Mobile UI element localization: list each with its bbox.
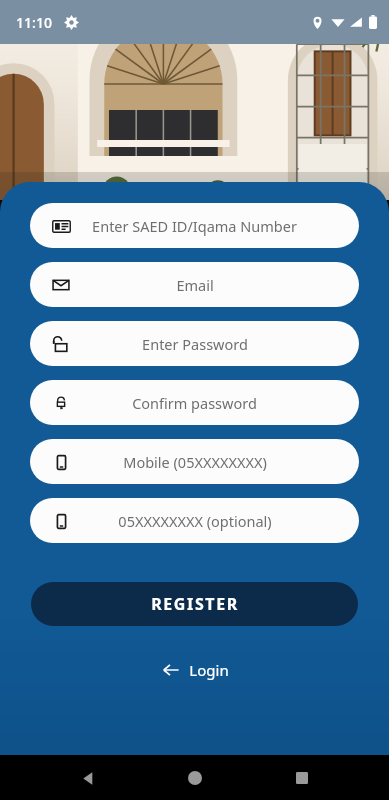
- staticText: REGISTER: [151, 593, 239, 615]
- staticText: Email: [176, 275, 214, 295]
- button[interactable]: 05XXXXXXXX (optional): [30, 498, 359, 543]
- button[interactable]: Mobile (05XXXXXXXX): [30, 439, 359, 484]
- button[interactable]: REGISTER: [31, 582, 358, 626]
- staticText: Login: [189, 660, 229, 680]
- button[interactable]: Enter Password: [30, 321, 359, 366]
- staticText: Mobile (05XXXXXXXX): [123, 452, 267, 472]
- staticText: Confirm password: [132, 393, 257, 413]
- button[interactable]: Confirm password: [30, 380, 359, 425]
- button[interactable]: Enter SAED ID/Iqama Number: [30, 203, 359, 248]
- staticText: 05XXXXXXXX (optional): [118, 511, 272, 531]
- staticText: Enter SAED ID/Iqama Number: [92, 216, 297, 236]
- button[interactable]: Login: [147, 654, 243, 686]
- button[interactable]: Recent apps: [282, 758, 322, 798]
- staticText: 11:10: [16, 13, 52, 32]
- button[interactable]: Email: [30, 262, 359, 307]
- staticText: Enter Password: [142, 334, 248, 354]
- button[interactable]: Back: [67, 758, 107, 798]
- button[interactable]: Home: [175, 758, 215, 798]
